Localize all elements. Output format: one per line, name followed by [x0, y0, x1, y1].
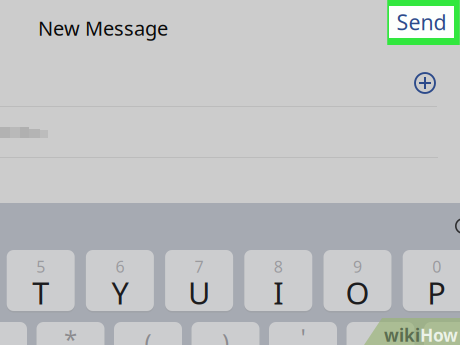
staticText: ) — [222, 326, 229, 345]
button[interactable]: Key — [424, 322, 460, 345]
button[interactable]: Add contact — [408, 66, 442, 100]
staticText: 0 — [432, 256, 441, 277]
staticText: Y — [111, 272, 128, 313]
staticText: ( — [144, 326, 151, 345]
staticText: 5 — [36, 256, 45, 277]
button[interactable]: U — [165, 250, 233, 311]
staticText: I — [273, 272, 283, 313]
staticText: New Message — [38, 15, 168, 41]
button[interactable]: ( — [114, 322, 182, 345]
staticText: O — [345, 272, 369, 313]
staticText: * — [64, 323, 77, 345]
staticText: 6 — [115, 256, 124, 277]
staticText: 7 — [195, 256, 204, 277]
staticText: P — [427, 272, 446, 313]
button[interactable]: * — [36, 322, 104, 345]
staticText: ' — [300, 321, 305, 345]
button[interactable]: T — [7, 250, 75, 311]
staticText: U — [188, 272, 210, 313]
button[interactable]: ) — [191, 322, 259, 345]
button[interactable]: Key — [346, 322, 414, 345]
button[interactable]: O — [323, 250, 391, 311]
staticText: T — [32, 272, 49, 313]
staticText: 8 — [274, 256, 283, 277]
staticText: How — [420, 323, 458, 345]
staticText: 9 — [353, 256, 362, 277]
button[interactable]: Y — [86, 250, 154, 311]
staticText: Send — [396, 8, 446, 36]
button[interactable]: Key — [0, 322, 27, 345]
button[interactable]: ' — [269, 322, 337, 345]
button[interactable]: Dictation — [455, 218, 460, 234]
staticText: wiki — [384, 323, 420, 345]
button[interactable]: I — [244, 250, 312, 311]
button[interactable]: Recipient — [0, 116, 60, 146]
button[interactable]: Send — [389, 6, 454, 38]
button[interactable]: P — [403, 250, 460, 311]
